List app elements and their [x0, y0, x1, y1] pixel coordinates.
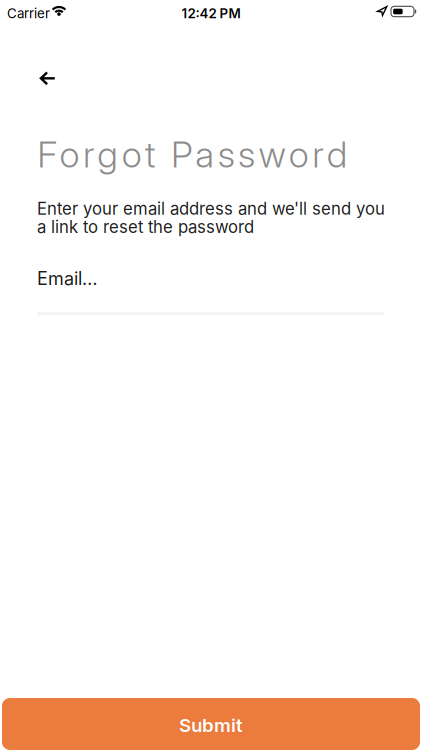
staticText: 12:42 PM: [181, 5, 240, 21]
button[interactable]: Back: [26, 56, 70, 100]
button[interactable]: Submit: [2, 698, 420, 750]
staticText: Submit: [179, 714, 243, 737]
button[interactable]: Email: [37, 268, 384, 315]
staticText: Enter your email address and we'll send …: [37, 198, 385, 219]
staticText: Forgot Password: [37, 133, 348, 176]
staticText: Carrier: [7, 5, 50, 21]
staticText: Email…: [37, 268, 98, 289]
staticText: a link to reset the password: [37, 217, 254, 237]
